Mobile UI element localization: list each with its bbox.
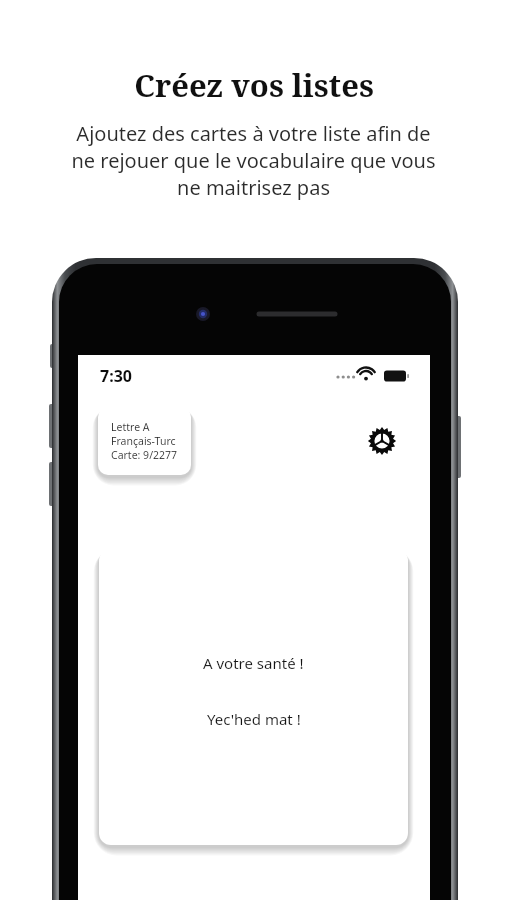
staticText: Lettre A: [111, 420, 150, 434]
staticText: Yec'hed mat !: [207, 709, 301, 729]
button[interactable]: Lettre A: [98, 407, 191, 475]
staticText: Français-Turc: [111, 434, 176, 448]
staticText: A votre santé !: [203, 653, 304, 673]
staticText: Créez vos listes: [134, 64, 374, 106]
staticText: 7:30: [100, 365, 132, 387]
staticText: Ajoutez des cartes à votre liste afin de…: [0, 120, 507, 201]
button[interactable]: A votre santé !: [99, 549, 408, 845]
button[interactable]: Settings: [360, 419, 404, 463]
staticText: Carte: 9/2277: [111, 448, 178, 462]
